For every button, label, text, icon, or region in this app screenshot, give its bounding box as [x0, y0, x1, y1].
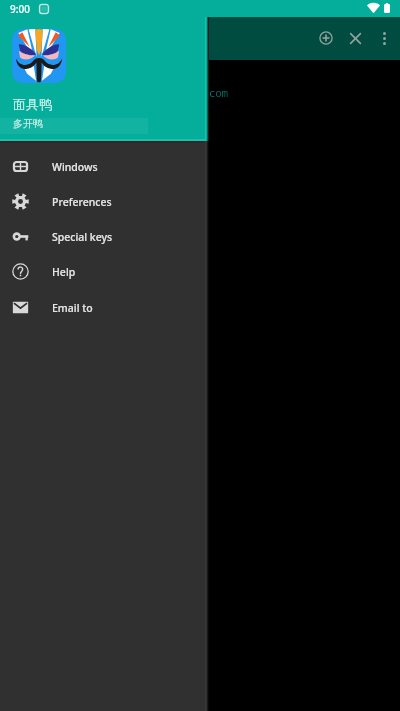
staticText: Preferences [52, 195, 112, 209]
button[interactable]: More options [368, 22, 400, 54]
staticText: 面具鸭 [13, 96, 52, 112]
button[interactable]: Help [0, 254, 205, 289]
button[interactable]: Email to [0, 290, 205, 325]
button[interactable]: Preferences [0, 184, 205, 219]
staticText: Special keys [52, 230, 113, 244]
staticText: Email to [52, 301, 93, 315]
staticText: 9:00 [10, 2, 30, 16]
staticText: com [209, 85, 228, 100]
button[interactable]: Windows [0, 149, 205, 184]
button[interactable]: New session [310, 22, 342, 54]
button[interactable]: Close [339, 22, 371, 54]
staticText: 多开鸭 [13, 117, 43, 130]
button[interactable]: Special keys [0, 219, 205, 254]
staticText: Windows [52, 160, 98, 174]
staticText: Help [52, 265, 76, 279]
